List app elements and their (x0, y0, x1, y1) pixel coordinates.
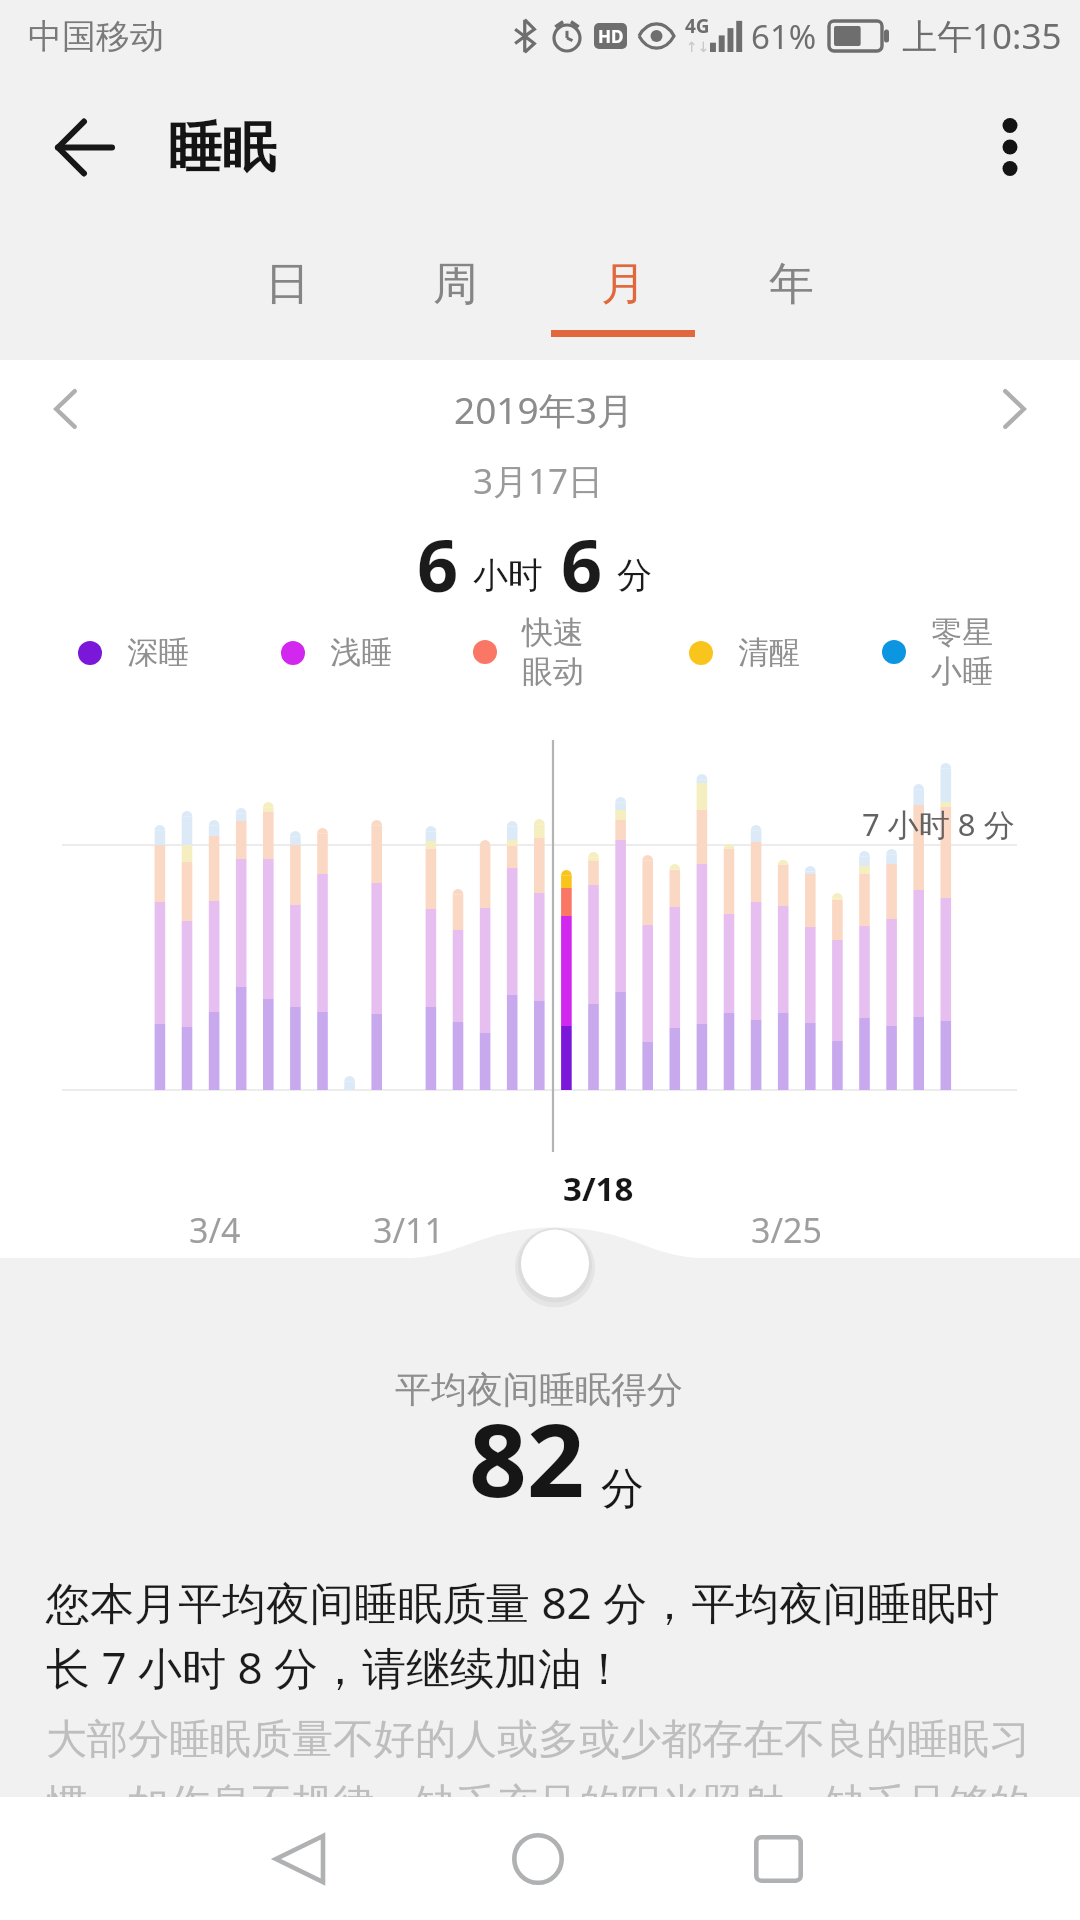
staticText: 82 (469, 1389, 585, 1527)
staticText: 6 (417, 515, 459, 613)
button[interactable]: More options (968, 105, 1052, 189)
staticText: 眼动 (522, 652, 584, 691)
button[interactable]: 零星 (882, 604, 993, 700)
staticText: 3/11 (373, 1207, 444, 1253)
staticText: 清醒 (738, 633, 800, 672)
button[interactable]: 快速 (473, 604, 584, 700)
staticText: 中国移动 (28, 15, 164, 58)
button[interactable]: Back (43, 105, 127, 189)
staticText: 分 (601, 1462, 644, 1516)
staticText: 平均夜间睡眠得分 (395, 1367, 683, 1412)
button[interactable]: Recent apps (708, 1815, 848, 1903)
button[interactable]: 月 (539, 222, 707, 352)
button[interactable]: 浅睡 (281, 604, 392, 700)
staticText: 零星 (931, 613, 993, 652)
staticText: 2019年3月 (454, 384, 634, 435)
staticText: 浅睡 (330, 633, 392, 672)
staticText: 日 (265, 256, 310, 313)
button[interactable]: 周 (371, 222, 539, 352)
staticText: 3月17日 (473, 457, 604, 505)
staticText: 年 (769, 256, 814, 313)
button[interactable]: 清醒 (689, 604, 800, 700)
staticText: 上午10:35 (902, 12, 1062, 60)
staticText: 大部分睡眠质量不好的人或多或少都存在不良的睡眠习惯，如作息不规律、缺乏充足的阳光… (46, 1714, 1032, 1894)
staticText: HD (598, 25, 624, 48)
staticText: 深睡 (127, 633, 189, 672)
staticText: 快速 (522, 613, 584, 652)
staticText: 睡眠 (168, 114, 276, 182)
staticText: 61% (751, 14, 817, 59)
button[interactable]: 年 (707, 222, 875, 352)
button[interactable]: Home (468, 1815, 608, 1903)
staticText: 4G (685, 13, 710, 39)
button[interactable]: 深睡 (78, 604, 189, 700)
button[interactable]: Next month (972, 367, 1056, 451)
button[interactable]: Back (229, 1815, 369, 1903)
staticText: 小睡 (931, 652, 993, 691)
staticText: 7 小时 8 分 (862, 803, 1015, 845)
button[interactable]: Previous month (23, 367, 107, 451)
staticText: 月 (601, 256, 646, 313)
staticText: 小时 (473, 553, 543, 597)
staticText: 3/18 (563, 1166, 634, 1211)
staticText: 周 (433, 256, 478, 313)
staticText: 3/25 (751, 1207, 822, 1253)
staticText: 3/4 (189, 1207, 241, 1253)
staticText: 分 (617, 553, 652, 597)
staticText: 您本月平均夜间睡眠质量 82 分，平均夜间睡眠时长 7 小时 8 分，请继续加油… (46, 1572, 1032, 1698)
staticText: ↑↓ (686, 39, 710, 55)
button[interactable]: 日 (203, 222, 371, 352)
staticText: 6 (561, 515, 603, 613)
